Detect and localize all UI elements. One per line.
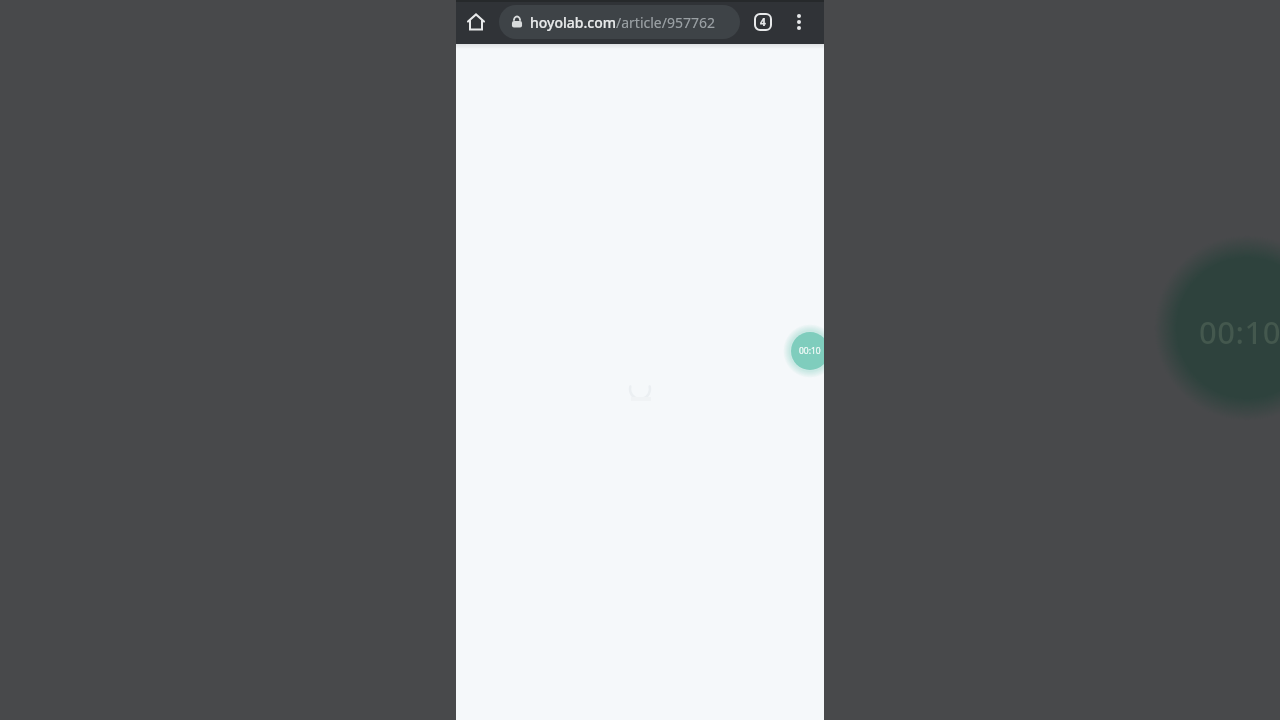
staticText: 4 <box>760 15 766 29</box>
staticText: 00:10 <box>799 345 821 357</box>
staticText: 00:10 <box>1199 311 1280 353</box>
button[interactable] <box>466 12 486 32</box>
button[interactable] <box>790 13 808 31</box>
button[interactable]: 4 <box>751 10 775 34</box>
staticText: /article/957762 <box>616 13 715 32</box>
button[interactable]: hoyolab.com <box>499 5 740 39</box>
staticText: hoyolab.com <box>530 13 616 32</box>
